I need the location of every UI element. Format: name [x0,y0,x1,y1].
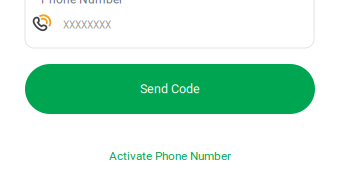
staticText: Activate Phone Number [109,149,231,163]
staticText: Phone Number [41,0,123,6]
button[interactable]: Send Code [25,64,315,114]
button[interactable]: Activate Phone Number [90,145,250,167]
staticText: Send Code [140,82,200,96]
staticText: XXXXXXXX [63,19,111,31]
button[interactable]: Phone Number [25,0,314,48]
